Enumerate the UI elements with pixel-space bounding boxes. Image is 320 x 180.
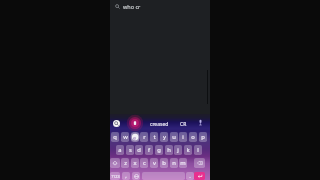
staticText: a [118,146,122,154]
button[interactable]: n [170,158,178,168]
button[interactable]: a [116,145,124,155]
staticText: p [201,133,205,141]
staticText: b [162,159,166,167]
button[interactable]: w [121,132,129,142]
button[interactable]: ?123 [110,172,120,180]
staticText: t [153,133,156,141]
staticText: q [113,133,117,141]
staticText: ?123 [111,174,120,179]
button[interactable]: , [122,172,130,180]
staticText: w [123,133,128,141]
staticText: d [137,146,141,154]
button[interactable]: t [150,132,158,142]
button[interactable]: s [126,145,134,155]
button[interactable] [142,172,185,180]
button[interactable]: k [184,145,192,155]
staticText: who cr [123,3,141,10]
button[interactable]: i [179,132,187,142]
staticText: f [148,146,150,154]
button[interactable]: p [199,132,207,142]
button[interactable]: r [140,132,148,142]
staticText: l [197,146,199,154]
button[interactable]: z [121,158,129,168]
button[interactable]: Search [113,120,120,127]
button[interactable]: Emoji [126,113,144,131]
button[interactable]: b [160,158,168,168]
staticText: , [125,172,127,180]
staticText: v [153,159,156,167]
button[interactable]: o [189,132,197,142]
button[interactable]: f [145,145,153,155]
button[interactable]: c [140,158,148,168]
staticText: o [191,133,195,141]
button[interactable]: who cr [110,0,210,13]
button[interactable]: Voice input [197,119,204,126]
button[interactable]: g [155,145,163,155]
button[interactable]: Language [132,172,140,180]
button[interactable]: u [170,132,178,142]
button[interactable]: d [135,145,143,155]
button[interactable]: j [174,145,182,155]
button[interactable]: e [131,132,139,142]
button[interactable]: creased [150,121,169,128]
staticText: . [189,172,191,180]
button[interactable]: CR [180,121,187,128]
staticText: s [129,146,132,154]
button[interactable]: q [111,132,119,142]
staticText: g [157,146,161,154]
button[interactable]: h [165,145,173,155]
button[interactable]: Backspace [194,158,205,168]
staticText: u [172,133,176,141]
staticText: e [133,134,137,141]
staticText: c [143,159,146,167]
staticText: h [167,146,171,154]
staticText: j [177,146,179,154]
staticText: k [186,146,190,154]
staticText: i [182,133,184,141]
staticText: r [143,133,146,141]
staticText: n [172,159,176,167]
button[interactable]: Enter [194,172,205,180]
button[interactable]: . [186,172,194,180]
button[interactable]: Shift [110,158,120,168]
button[interactable]: x [131,158,139,168]
button[interactable]: l [194,145,202,155]
button[interactable]: m [179,158,187,168]
button[interactable]: v [150,158,158,168]
staticText: y [163,133,166,141]
staticText: m [180,159,186,167]
staticText: x [133,159,137,167]
button[interactable]: y [160,132,168,142]
staticText: z [124,159,127,167]
